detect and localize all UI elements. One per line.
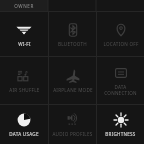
staticText: CONNECTION	[104, 90, 137, 96]
staticText: AUDIO PROFILES	[52, 131, 93, 137]
staticText: DATA USAGE	[9, 131, 39, 137]
button[interactable]	[48, 0, 96, 12]
button[interactable]: BLUETOOTH	[49, 12, 96, 56]
staticText: DATA	[114, 84, 127, 90]
staticText: AIR SHUFFLE	[9, 87, 40, 93]
button[interactable]: AUDIO PROFILES	[49, 105, 96, 144]
button[interactable]: LOCATION OFF	[97, 12, 144, 56]
staticText: BRIGHTNESS	[105, 131, 136, 137]
button[interactable]: WI-FI	[0, 12, 48, 56]
staticText: WI-FI	[18, 41, 31, 47]
button[interactable]: BRIGHTNESS	[97, 105, 144, 144]
staticText: AIRPLANE MODE	[53, 87, 93, 93]
staticText: BLUETOOTH	[58, 41, 87, 47]
button[interactable]: AIR SHUFFLE	[0, 57, 48, 104]
staticText: LOCATION OFF	[103, 41, 139, 47]
button[interactable]: DATA USAGE	[0, 105, 48, 144]
button[interactable]: AIRPLANE MODE	[49, 57, 96, 104]
button[interactable]: OWNER	[0, 0, 48, 12]
button[interactable]: DATA CONNECTION	[97, 57, 144, 104]
button[interactable]	[96, 0, 144, 12]
staticText: OWNER	[14, 3, 34, 9]
